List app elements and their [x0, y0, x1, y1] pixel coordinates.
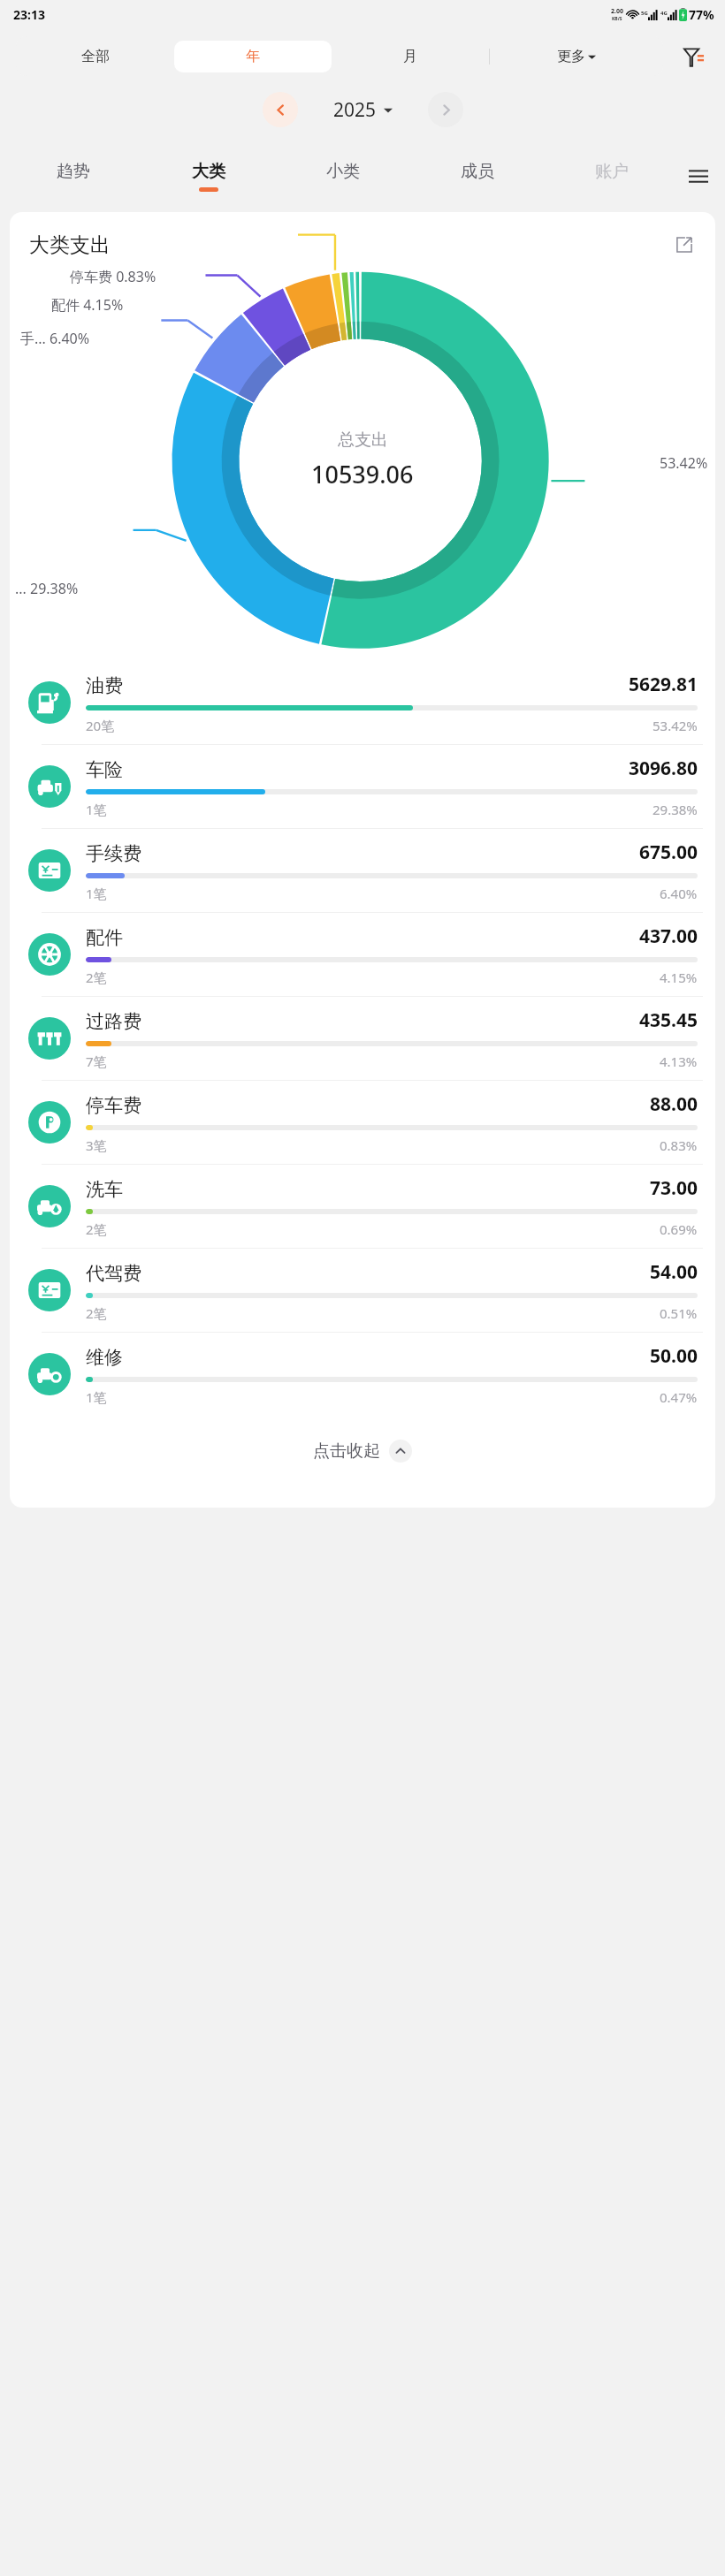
staticText: 437.00 — [639, 923, 698, 949]
staticText: 3096.80 — [629, 756, 698, 781]
staticText: KB/S — [612, 16, 622, 22]
button[interactable]: Next year — [428, 92, 463, 127]
staticText: 0.83% — [660, 1136, 698, 1154]
button[interactable]: 手续费 — [10, 829, 715, 912]
staticText: 停车费 0.83% — [70, 267, 156, 286]
staticText: 10539.06 — [311, 458, 414, 490]
staticText: 0.69% — [660, 1220, 698, 1238]
staticText: 2025 — [333, 97, 377, 123]
staticText: 4G — [660, 10, 668, 17]
staticText: 77% — [689, 6, 714, 23]
button[interactable]: 点击收起 — [10, 1416, 715, 1508]
staticText: 6.40% — [660, 885, 698, 902]
staticText: 4.13% — [660, 1052, 698, 1070]
staticText: 总支出 — [338, 429, 388, 451]
staticText: 点击收起 — [313, 1440, 380, 1462]
staticText: 代驾费 — [86, 1262, 141, 1285]
staticText: 1笔 — [86, 801, 107, 818]
button[interactable]: 代驾费 — [10, 1249, 715, 1332]
staticText: 0.51% — [660, 1304, 698, 1322]
staticText: 大类支出 — [29, 232, 111, 258]
staticText: 53.42% — [652, 717, 698, 734]
staticText: 1笔 — [86, 1388, 107, 1406]
staticText: 小类 — [326, 161, 360, 182]
staticText: 50.00 — [650, 1343, 698, 1369]
staticText: 维修 — [86, 1346, 123, 1369]
button[interactable]: 车险 — [10, 745, 715, 828]
button[interactable]: 2025 — [333, 97, 393, 123]
button[interactable]: 全部 — [16, 48, 174, 65]
button[interactable]: 维修 — [10, 1333, 715, 1416]
staticText: 手... 6.40% — [20, 329, 90, 348]
staticText: 3笔 — [86, 1136, 107, 1154]
staticText: 账户 — [595, 161, 629, 182]
button[interactable]: 成员 — [410, 148, 545, 203]
button[interactable]: Expand — [671, 232, 698, 258]
staticText: 54.00 — [650, 1259, 698, 1285]
staticText: 2.00 — [611, 7, 623, 16]
button[interactable]: Menu — [679, 148, 718, 203]
button[interactable]: 洗车 — [10, 1165, 715, 1248]
staticText: 7笔 — [86, 1052, 107, 1070]
staticText: 2笔 — [86, 1304, 107, 1322]
staticText: 0.47% — [660, 1388, 698, 1406]
staticText: 2笔 — [86, 969, 107, 986]
staticText: 年 — [246, 48, 260, 65]
button[interactable]: 更多 — [490, 48, 663, 65]
button[interactable]: 年 — [174, 41, 332, 72]
staticText: 4.15% — [660, 969, 698, 986]
button[interactable]: 账户 — [545, 148, 679, 203]
staticText: 大类 — [192, 161, 225, 182]
staticText: ... 29.38% — [15, 579, 79, 598]
staticText: 洗车 — [86, 1178, 123, 1201]
staticText: 更多 — [557, 48, 585, 65]
button[interactable]: Previous year — [263, 92, 298, 127]
staticText: 1笔 — [86, 885, 107, 902]
staticText: 车险 — [86, 758, 123, 781]
staticText: 5629.81 — [629, 672, 698, 697]
button[interactable]: Filter — [675, 38, 713, 75]
staticText: 配件 4.15% — [51, 295, 124, 315]
staticText: 23:13 — [13, 6, 45, 23]
button[interactable]: 油费 — [10, 661, 715, 744]
staticText: 88.00 — [650, 1091, 698, 1117]
button[interactable]: 配件 — [10, 913, 715, 996]
staticText: 成员 — [461, 161, 494, 182]
staticText: 53.42% — [660, 453, 708, 473]
staticText: 油费 — [86, 674, 123, 697]
staticText: 2笔 — [86, 1220, 107, 1238]
staticText: 停车费 — [86, 1094, 141, 1117]
staticText: 29.38% — [652, 801, 698, 818]
staticText: 20笔 — [86, 717, 115, 734]
button[interactable]: 月 — [332, 48, 489, 65]
button[interactable]: 小类 — [276, 148, 410, 203]
button[interactable]: 过路费 — [10, 997, 715, 1080]
staticText: 675.00 — [639, 840, 698, 865]
staticText: 73.00 — [650, 1175, 698, 1201]
staticText: 全部 — [81, 48, 110, 65]
staticText: 手续费 — [86, 842, 141, 865]
staticText: 月 — [403, 48, 417, 65]
staticText: 5G — [641, 10, 648, 17]
button[interactable]: 停车费 — [10, 1081, 715, 1164]
staticText: 435.45 — [639, 1007, 698, 1033]
button[interactable]: 趋势 — [5, 148, 141, 203]
button[interactable]: 大类 — [141, 148, 276, 203]
staticText: 趋势 — [57, 161, 90, 182]
staticText: 配件 — [86, 926, 123, 949]
staticText: 过路费 — [86, 1010, 141, 1033]
